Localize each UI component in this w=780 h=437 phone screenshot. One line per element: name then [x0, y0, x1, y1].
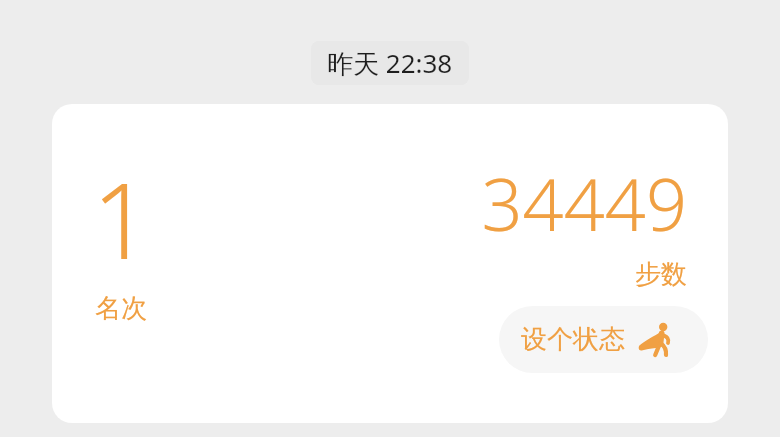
staticText: 34449 — [481, 154, 687, 252]
staticText: 1 — [92, 148, 152, 290]
button[interactable]: 1 — [52, 104, 728, 423]
staticText: 步数 — [635, 258, 687, 291]
staticText: 昨天 22:38 — [327, 45, 453, 81]
other: Set status — [637, 320, 677, 360]
button[interactable]: 昨天 22:38 — [311, 41, 469, 85]
button[interactable]: 设个状态 — [499, 306, 708, 373]
staticText: 名次 — [95, 292, 147, 325]
staticText: 设个状态 — [521, 323, 625, 356]
